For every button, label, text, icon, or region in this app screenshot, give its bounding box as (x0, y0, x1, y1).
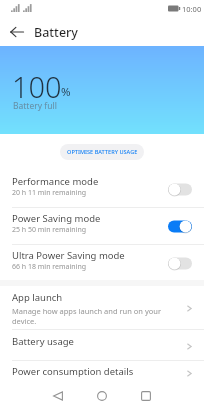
staticText: 100 (12, 67, 62, 106)
staticText: 20 h 11 min remaining (12, 188, 87, 198)
staticText: App launch (12, 291, 63, 304)
staticText: Ultra Power Saving mode (12, 249, 125, 262)
button[interactable]: Back (44, 384, 72, 408)
staticText: % (61, 84, 71, 100)
staticText: Battery usage (12, 335, 74, 348)
staticText: 66 h 18 min remaining (12, 262, 87, 272)
staticText: 10:00 (182, 4, 202, 14)
button[interactable]: OPTIMISE BATTERY USAGE (60, 144, 144, 160)
button[interactable]: Power consumption details (0, 361, 204, 386)
staticText: Power consumption details (12, 365, 134, 378)
staticText: Manage how apps launch and run on your d… (12, 306, 172, 326)
button[interactable]: Battery usage (0, 331, 204, 361)
button[interactable]: Home (88, 384, 116, 408)
staticText: 25 h 50 min remaining (12, 225, 87, 235)
button[interactable]: App launch (0, 287, 204, 330)
button[interactable]: Back (6, 21, 28, 43)
button[interactable]: Recents (132, 384, 160, 408)
staticText: Performance mode (12, 175, 99, 188)
staticText: OPTIMISE BATTERY USAGE (67, 148, 138, 156)
button[interactable]: Power Saving mode (0, 208, 204, 245)
staticText: Battery (34, 24, 78, 41)
button[interactable]: Ultra Power Saving mode (0, 245, 204, 282)
staticText: Power Saving mode (12, 212, 101, 225)
staticText: Battery full (13, 100, 57, 112)
button[interactable]: Performance mode (0, 171, 204, 208)
